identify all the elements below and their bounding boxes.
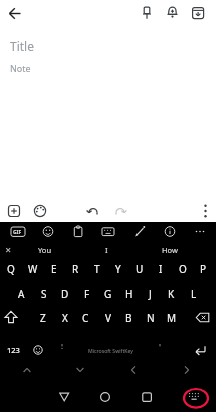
- button[interactable]: A: [11, 282, 32, 306]
- button[interactable]: [162, 2, 184, 24]
- button[interactable]: H: [118, 282, 139, 306]
- button[interactable]: T: [86, 257, 107, 281]
- button[interactable]: [36, 223, 60, 240]
- button[interactable]: [52, 340, 72, 360]
- staticText: Y: [115, 262, 121, 276]
- staticText: E: [51, 262, 57, 276]
- staticText: You: [38, 245, 52, 255]
- button[interactable]: [4, 3, 26, 25]
- button[interactable]: Q: [0, 257, 21, 281]
- button[interactable]: [91, 385, 119, 409]
- button[interactable]: Microsoft SwiftKey: [72, 341, 148, 360]
- button[interactable]: [192, 306, 215, 329]
- staticText: I: [105, 245, 108, 255]
- button[interactable]: [195, 200, 216, 222]
- staticText: Q: [7, 262, 15, 276]
- button[interactable]: [69, 362, 91, 378]
- button[interactable]: G: [97, 282, 118, 306]
- button[interactable]: L: [183, 282, 204, 306]
- staticText: G: [104, 287, 112, 301]
- staticText: S: [41, 287, 47, 301]
- button[interactable]: [190, 340, 214, 360]
- button[interactable]: [188, 223, 212, 240]
- button[interactable]: M: [161, 306, 182, 330]
- button[interactable]: [122, 362, 144, 378]
- button[interactable]: X: [54, 306, 75, 330]
- button[interactable]: E: [43, 257, 64, 281]
- staticText: F: [84, 287, 90, 301]
- button[interactable]: P: [193, 257, 214, 281]
- staticText: How: [162, 245, 178, 255]
- button[interactable]: [128, 223, 152, 240]
- staticText: M: [167, 311, 177, 325]
- button[interactable]: I: [78, 242, 134, 258]
- button[interactable]: [158, 223, 182, 240]
- staticText: X: [62, 311, 68, 325]
- staticText: J: [149, 287, 152, 301]
- button[interactable]: [1, 306, 22, 329]
- staticText: D: [61, 287, 69, 301]
- staticText: R: [72, 262, 79, 276]
- staticText: U: [136, 262, 144, 276]
- button[interactable]: B: [118, 306, 139, 330]
- button[interactable]: D: [54, 282, 75, 306]
- staticText: Title: [10, 38, 34, 54]
- button[interactable]: [29, 200, 51, 222]
- button[interactable]: Y: [107, 257, 128, 281]
- button[interactable]: O: [172, 257, 193, 281]
- staticText: T: [94, 262, 100, 276]
- staticText: 123: [7, 345, 20, 355]
- staticText: V: [105, 311, 111, 325]
- button[interactable]: N: [140, 306, 161, 330]
- button[interactable]: [136, 2, 158, 24]
- button[interactable]: W: [22, 257, 43, 281]
- button[interactable]: [66, 223, 90, 240]
- button[interactable]: [50, 385, 78, 409]
- button[interactable]: You: [17, 242, 73, 258]
- staticText: C: [82, 311, 89, 325]
- staticText: B: [125, 311, 132, 325]
- button[interactable]: [133, 385, 161, 409]
- button[interactable]: C: [75, 306, 96, 330]
- staticText: P: [200, 262, 207, 276]
- button[interactable]: Z: [32, 306, 53, 330]
- staticText: W: [28, 262, 38, 276]
- button[interactable]: [1, 244, 15, 257]
- button[interactable]: U: [129, 257, 150, 281]
- staticText: H: [125, 287, 133, 301]
- button[interactable]: [187, 2, 209, 24]
- button[interactable]: [82, 200, 104, 222]
- staticText: N: [147, 311, 155, 325]
- button[interactable]: [16, 362, 38, 378]
- staticText: O: [179, 262, 187, 276]
- button[interactable]: K: [161, 282, 182, 306]
- button[interactable]: S: [33, 282, 54, 306]
- button[interactable]: [28, 340, 48, 360]
- button[interactable]: [3, 200, 25, 222]
- staticText: Z: [40, 311, 46, 325]
- staticText: L: [191, 287, 197, 301]
- button[interactable]: [96, 223, 120, 240]
- button[interactable]: [150, 340, 170, 360]
- button[interactable]: [109, 200, 131, 222]
- button[interactable]: I: [150, 257, 171, 281]
- button[interactable]: F: [76, 282, 97, 306]
- button[interactable]: J: [140, 282, 161, 306]
- button[interactable]: R: [65, 257, 86, 281]
- button[interactable]: [6, 223, 30, 240]
- button[interactable]: [180, 385, 210, 409]
- button[interactable]: 123: [2, 340, 24, 360]
- button[interactable]: V: [97, 306, 118, 330]
- staticText: A: [18, 287, 25, 301]
- button[interactable]: [176, 362, 198, 378]
- staticText: Note: [10, 62, 31, 74]
- staticText: Microsoft SwiftKey: [88, 347, 133, 354]
- staticText: K: [168, 287, 175, 301]
- staticText: GIF: [13, 229, 22, 236]
- staticText: I: [159, 262, 163, 276]
- button[interactable]: How: [142, 242, 198, 258]
